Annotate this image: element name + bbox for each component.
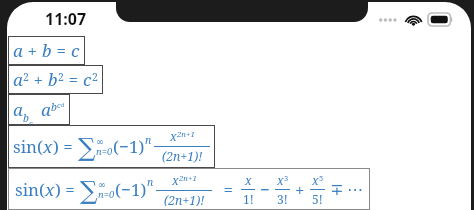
staticText: − <box>119 135 129 158</box>
staticText: 3! <box>277 191 288 206</box>
staticText: = <box>64 68 83 91</box>
staticText: 1! <box>243 191 254 206</box>
staticText: + <box>29 68 48 91</box>
button[interactable]: sin( <box>15 172 363 206</box>
staticText: 5 <box>319 173 324 183</box>
staticText: x <box>312 172 319 188</box>
staticText: sin( <box>13 135 43 158</box>
staticText: c <box>29 118 33 128</box>
staticText: x <box>170 128 177 145</box>
staticText: 11:07 <box>45 8 87 30</box>
staticText: b <box>23 111 29 125</box>
staticText: x <box>43 135 53 158</box>
other: Status icons <box>379 13 453 26</box>
staticText: ∓ <box>330 180 344 199</box>
staticText: 3 <box>284 173 289 183</box>
staticText: 1) <box>131 178 147 201</box>
staticText: ∞ <box>96 136 104 147</box>
staticText: n=0 <box>98 188 115 201</box>
staticText: − <box>260 178 270 201</box>
staticText: − <box>121 178 131 201</box>
staticText: a <box>41 98 51 121</box>
staticText: a <box>13 39 23 62</box>
staticText: sin( <box>15 178 45 201</box>
staticText: 1) <box>129 135 145 158</box>
button[interactable]: sin( <box>13 128 210 165</box>
staticText: d <box>33 122 37 129</box>
staticText: 5! <box>312 191 323 206</box>
button[interactable]: a <box>13 39 80 62</box>
staticText: x <box>277 172 284 188</box>
staticText: d <box>61 101 65 108</box>
staticText: ( <box>113 135 119 158</box>
staticText: a <box>13 98 23 121</box>
staticText: ⋯ <box>347 180 363 199</box>
staticText: x <box>245 172 252 188</box>
staticText: ∑ <box>78 133 96 162</box>
staticText: ∑ <box>80 176 98 205</box>
staticText: a <box>13 68 23 91</box>
staticText: n <box>145 133 152 147</box>
button[interactable]: a <box>13 68 98 91</box>
staticText: b <box>48 68 58 91</box>
staticText: = <box>219 178 238 201</box>
staticText: + <box>295 178 305 201</box>
staticText: 2 <box>23 70 29 84</box>
staticText: ) = <box>55 178 80 201</box>
staticText: c <box>83 68 92 91</box>
staticText: ∞ <box>98 179 106 190</box>
staticText: 2 <box>58 70 64 84</box>
staticText: x <box>172 172 179 189</box>
staticText: b <box>42 39 52 62</box>
staticText: 2 <box>92 70 98 84</box>
button[interactable]: a <box>13 98 65 121</box>
staticText: (2n+1)! <box>162 148 203 165</box>
staticText: ) = <box>53 135 78 158</box>
staticText: 2n+1 <box>179 173 197 184</box>
staticText: 2n+1 <box>177 129 195 140</box>
staticText: c <box>71 39 80 62</box>
staticText: b <box>51 100 57 114</box>
staticText: ( <box>115 178 121 201</box>
staticText: n=0 <box>96 145 113 158</box>
staticText: (2n+1)! <box>164 192 205 206</box>
staticText: c <box>57 100 61 110</box>
staticText: x <box>45 178 55 201</box>
staticText: = <box>52 39 71 62</box>
staticText: n <box>147 175 154 189</box>
staticText: + <box>23 39 42 62</box>
